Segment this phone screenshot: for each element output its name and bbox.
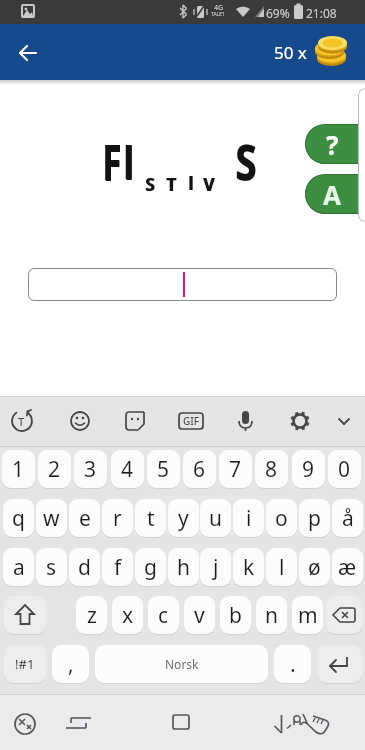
staticText: k [243,553,255,582]
button[interactable]: Norsk [95,645,268,683]
button[interactable]: . [274,645,311,683]
staticText: å [342,504,354,533]
button[interactable] [3,697,47,747]
button[interactable]: 0 [328,450,361,488]
button[interactable]: 4 [111,450,144,488]
button[interactable]: ? [305,124,359,164]
button[interactable]: 7 [219,450,252,488]
staticText: F [103,129,122,194]
button[interactable] [259,697,303,747]
staticText: !#1 [15,655,35,673]
button[interactable]: s [36,548,67,586]
staticText: z [87,601,97,630]
button[interactable]: k [233,548,264,586]
button[interactable]: 6 [183,450,216,488]
button[interactable]: c [148,596,179,634]
staticText: v [194,601,205,630]
button[interactable]: å [332,499,363,537]
staticText: 2 [48,455,61,484]
button[interactable] [159,697,203,747]
staticText: V [204,173,216,196]
button[interactable] [1,399,43,443]
button[interactable]: m [292,596,323,634]
button[interactable]: f [102,548,133,586]
button[interactable]: l [266,548,297,586]
staticText: a [13,553,25,582]
staticText: GIF [183,414,200,428]
button[interactable]: p [299,499,330,537]
staticText: y [178,504,189,533]
button[interactable]: !#1 [4,645,46,683]
staticText: f [114,553,122,582]
button[interactable]: o [266,499,297,537]
staticText: T [167,173,177,196]
button[interactable]: 2 [38,450,71,488]
button[interactable]: t [135,499,166,537]
button[interactable]: h [168,548,199,586]
button[interactable] [56,697,100,747]
button[interactable] [224,399,266,443]
button[interactable] [59,399,101,443]
staticText: S [236,129,257,194]
button[interactable]: 9 [292,450,325,488]
button[interactable]: w [36,499,67,537]
button[interactable]: z [76,596,107,634]
staticText: e [79,504,91,533]
staticText: 0 [338,455,351,484]
button[interactable]: q [3,499,34,537]
button[interactable]: e [69,499,100,537]
button[interactable]: g [135,548,166,586]
button[interactable] [326,596,362,634]
button[interactable] [288,697,332,747]
staticText: n [265,601,278,630]
button[interactable] [8,32,48,72]
staticText: j [213,553,219,582]
button[interactable] [114,399,156,443]
button[interactable] [28,268,337,301]
staticText: i [246,504,252,533]
button[interactable]: A [305,174,359,214]
button[interactable]: 3 [74,450,107,488]
staticText: ? [326,127,339,162]
staticText: l [188,172,194,195]
button[interactable]: ø [299,548,330,586]
button[interactable]: , [52,645,89,683]
button[interactable]: d [69,548,100,586]
staticText: F [103,130,122,195]
staticText: m [298,601,318,630]
button[interactable] [169,399,211,443]
button[interactable]: r [102,499,133,537]
staticText: 4G [214,3,224,13]
button[interactable] [279,399,321,443]
button[interactable]: y [168,499,199,537]
staticText: . [290,650,296,679]
staticText: A [323,177,341,212]
staticText: l [124,131,135,192]
staticText: , [68,650,74,679]
button[interactable]: a [3,548,34,586]
staticText: p [308,504,321,533]
button[interactable]: v [184,596,215,634]
button[interactable]: æ [332,548,363,586]
staticText: 1 [12,455,25,484]
staticText: r [113,504,122,533]
staticText: h [177,553,190,582]
button[interactable]: 8 [255,450,288,488]
staticText: w [43,504,60,533]
button[interactable] [317,645,362,683]
button[interactable]: b [220,596,251,634]
button[interactable]: u [200,499,231,537]
button[interactable]: j [200,548,231,586]
staticText: g [144,553,157,582]
staticText: c [158,601,169,630]
staticText: o [275,504,288,533]
button[interactable] [323,399,365,443]
staticText: t [147,504,155,533]
button[interactable]: i [233,499,264,537]
button[interactable]: n [256,596,287,634]
button[interactable] [4,596,46,634]
button[interactable]: 1 [2,450,35,488]
button[interactable]: x [112,596,143,634]
staticText: TALE1 [211,11,225,18]
button[interactable]: 5 [147,450,180,488]
